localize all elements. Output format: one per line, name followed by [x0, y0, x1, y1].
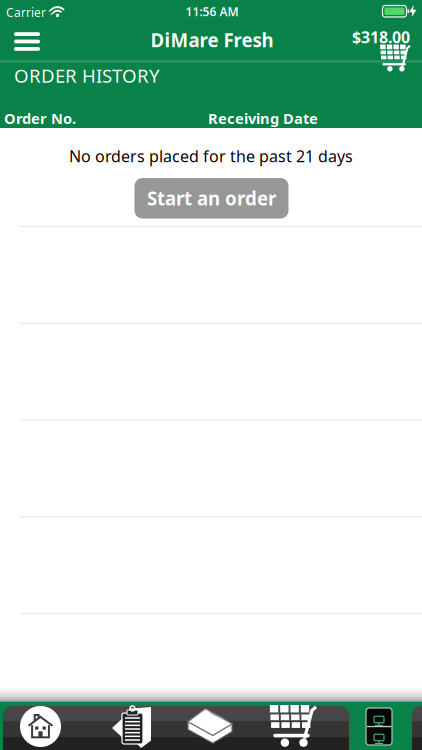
staticText: Carrier — [6, 4, 46, 20]
button[interactable] — [14, 32, 40, 51]
button[interactable]: $318.00 — [348, 23, 410, 63]
button[interactable] — [366, 708, 392, 745]
staticText: 11:56 AM — [185, 3, 238, 19]
button[interactable] — [102, 704, 144, 749]
staticText: Receiving Date — [208, 108, 318, 128]
button[interactable] — [187, 708, 233, 744]
button[interactable]: Start an order — [134, 178, 288, 218]
staticText: ORDER HISTORY — [14, 63, 160, 88]
staticText: $318.00 — [352, 26, 410, 48]
staticText: Start an order — [147, 186, 276, 211]
staticText: No orders placed for the past 21 days — [69, 145, 353, 167]
staticText: Order No. — [4, 108, 76, 128]
button[interactable] — [20, 706, 61, 747]
button[interactable] — [268, 705, 316, 747]
staticText: DiMare Fresh — [150, 28, 273, 52]
